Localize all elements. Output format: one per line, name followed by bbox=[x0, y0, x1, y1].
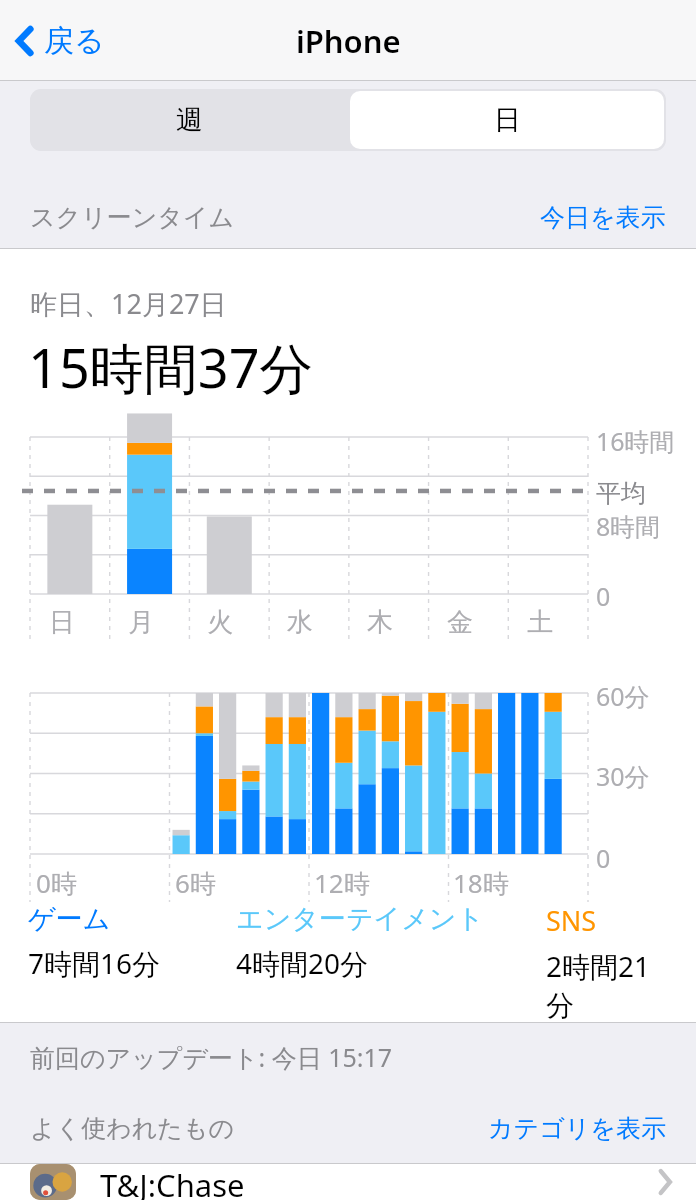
staticText: 18時 bbox=[453, 865, 509, 901]
staticText: 日 bbox=[49, 606, 75, 639]
staticText: エンターテイメント bbox=[236, 902, 485, 936]
button[interactable]: 週 bbox=[30, 89, 348, 151]
staticText: 戻る bbox=[44, 22, 105, 60]
staticText: 12時 bbox=[314, 865, 370, 901]
staticText: 0 bbox=[596, 841, 611, 875]
staticText: スクリーンタイム bbox=[30, 202, 235, 233]
staticText: 0時 bbox=[36, 865, 77, 901]
staticText: よく使われたもの bbox=[30, 1113, 235, 1144]
staticText: T&J:Chase bbox=[100, 1164, 245, 1200]
staticText: 土 bbox=[527, 606, 553, 639]
staticText: 前回のアップデート: 今日 15:17 bbox=[30, 1040, 393, 1074]
staticText: 昨日、12月27日 bbox=[30, 285, 227, 322]
staticText: ゲーム bbox=[28, 902, 111, 936]
button[interactable]: 日 bbox=[350, 91, 664, 149]
staticText: 日 bbox=[494, 103, 521, 137]
staticText: 水 bbox=[287, 606, 313, 639]
staticText: 60分 bbox=[596, 679, 650, 713]
staticText: SNS bbox=[546, 902, 597, 939]
staticText: 木 bbox=[367, 606, 393, 639]
staticText: 30分 bbox=[596, 759, 650, 793]
staticText: 平均 bbox=[596, 478, 646, 509]
staticText: 火 bbox=[207, 606, 233, 639]
staticText: 今日を表示 bbox=[540, 202, 666, 233]
staticText: iPhone bbox=[296, 20, 401, 62]
staticText: 2時間21分 bbox=[546, 947, 676, 1022]
staticText: 月 bbox=[128, 606, 154, 639]
staticText: 16時間 bbox=[596, 424, 675, 458]
staticText: 金 bbox=[447, 606, 473, 639]
staticText: 週 bbox=[176, 103, 203, 137]
button[interactable]: 今日を表示 bbox=[540, 202, 666, 233]
button[interactable]: カテゴリを表示 bbox=[488, 1113, 666, 1144]
staticText: 8時間 bbox=[596, 509, 661, 543]
staticText: 7時間16分 bbox=[28, 944, 161, 982]
button[interactable]: ゲーム bbox=[28, 902, 236, 982]
staticText: 15時間37分 bbox=[28, 330, 314, 404]
button[interactable]: エンターテイメント bbox=[236, 902, 546, 982]
button[interactable]: T&J:Chase bbox=[0, 1164, 696, 1200]
button[interactable]: 戻る bbox=[8, 16, 113, 66]
staticText: 6時 bbox=[175, 865, 216, 901]
other: Show details bbox=[658, 1169, 672, 1195]
staticText: カテゴリを表示 bbox=[488, 1113, 666, 1144]
staticText: 0 bbox=[596, 579, 611, 613]
staticText: 4時間20分 bbox=[236, 944, 369, 982]
button[interactable]: SNS bbox=[546, 902, 676, 1022]
